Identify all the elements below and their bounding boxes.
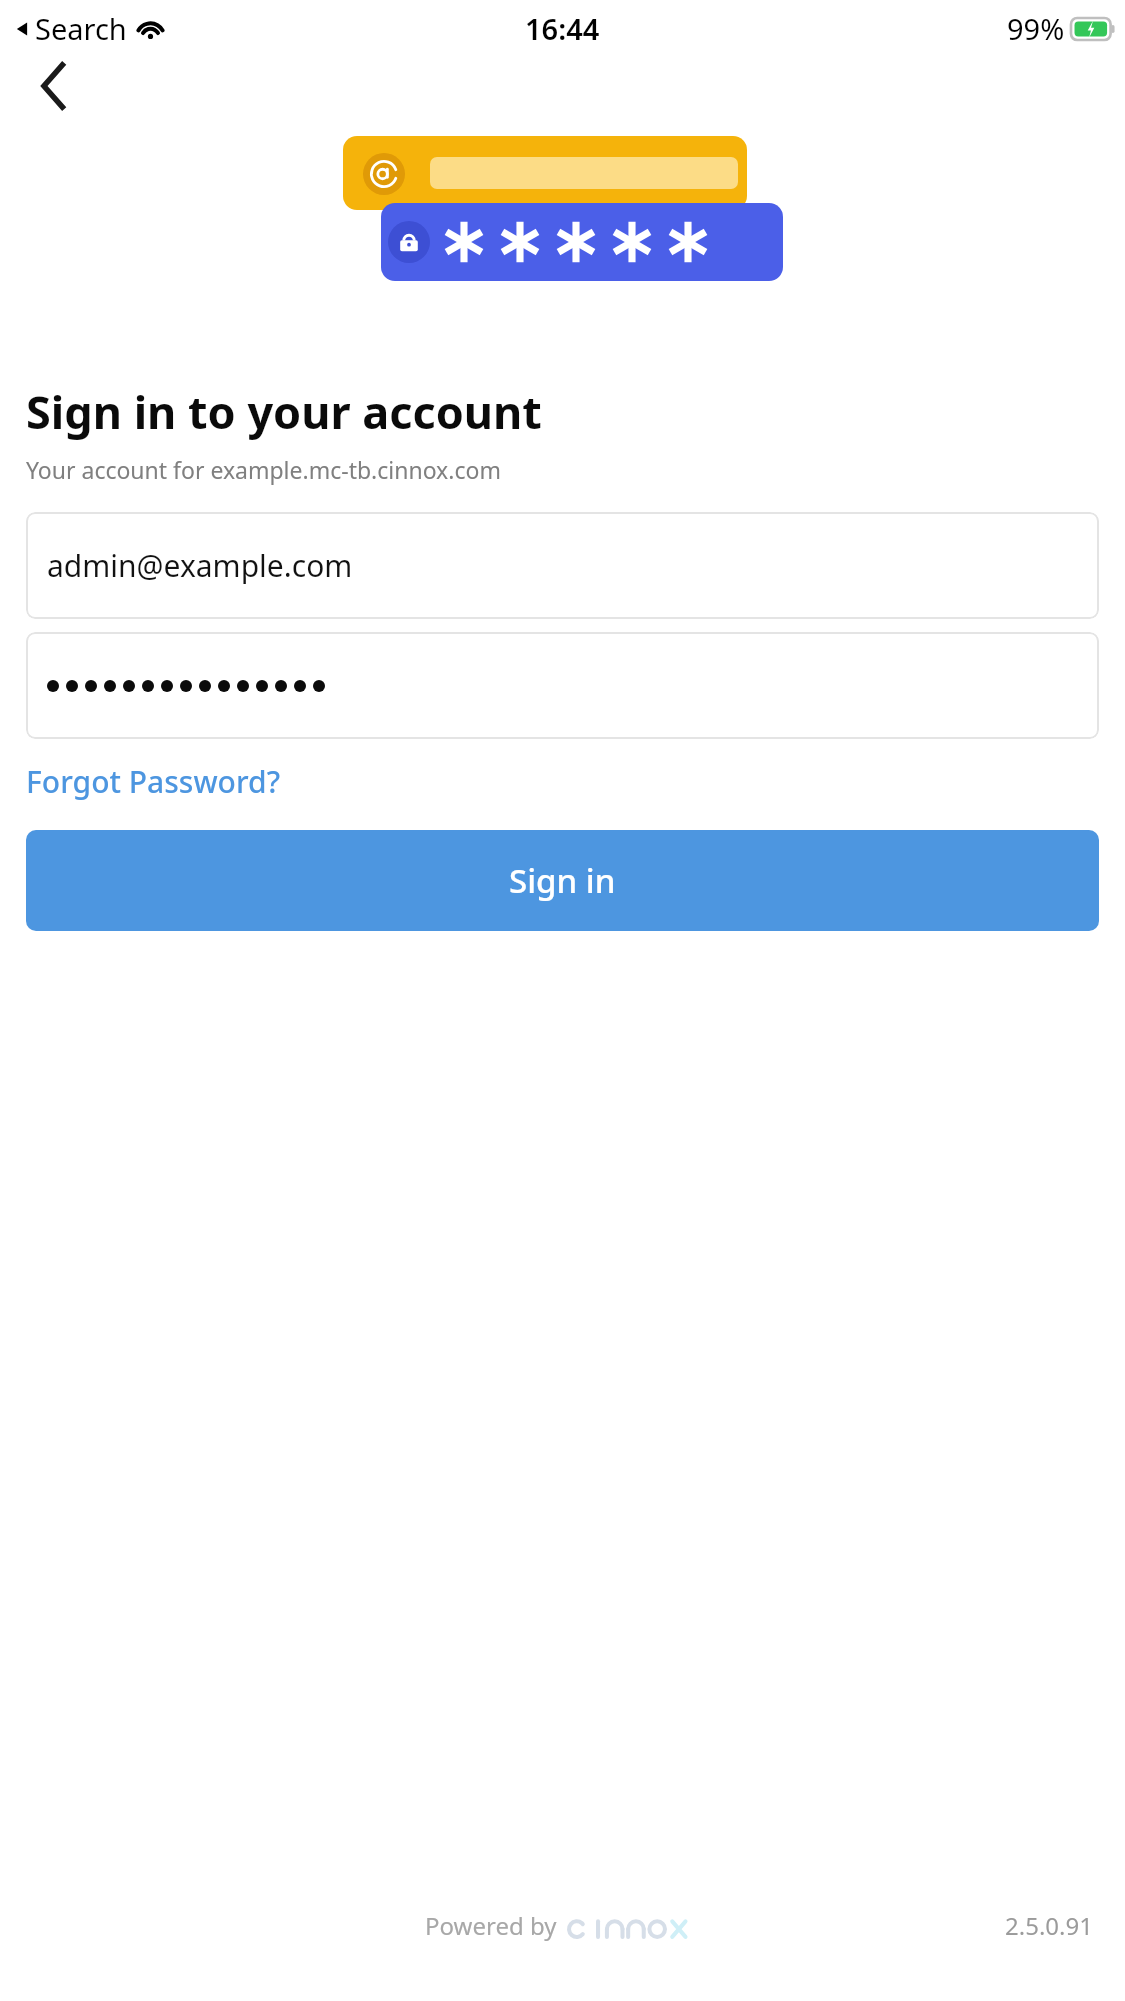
staticText: 16:44	[525, 9, 600, 48]
staticText: Forgot Password?	[26, 761, 281, 802]
staticText: admin@example.com	[47, 545, 353, 586]
button[interactable]: admin@example.com	[26, 512, 1099, 619]
button[interactable]: Forgot Password?	[26, 761, 281, 802]
staticText: Sign in to your account	[26, 381, 542, 442]
staticText: 99%	[1007, 9, 1065, 48]
button[interactable]: Sign in	[26, 830, 1099, 931]
button[interactable]: Back	[24, 56, 84, 116]
staticText: Powered by	[425, 1909, 557, 1942]
staticText: Sign in	[509, 858, 616, 903]
staticText: 2.5.0.91	[1005, 1909, 1093, 1942]
staticText: Your account for example.mc-tb.cinnox.co…	[26, 454, 501, 485]
button[interactable]	[26, 632, 1099, 739]
staticText: Search	[35, 9, 127, 48]
